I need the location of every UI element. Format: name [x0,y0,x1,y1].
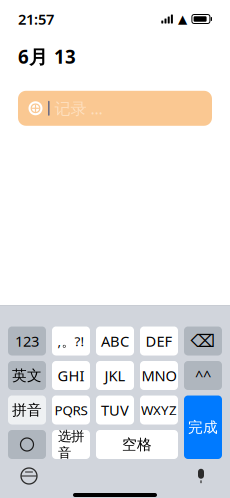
staticText: 空格 [122,435,152,453]
staticText: MNO [141,366,176,385]
button[interactable]: ^^ [184,361,222,390]
staticText: 21:57 [18,9,54,29]
staticText: GHI [57,366,84,385]
button[interactable]: 完成 [184,395,222,459]
staticText: 拼音 [12,401,42,419]
button[interactable]: 123 [8,326,46,355]
staticText: 6月 [18,44,48,69]
staticText: ⌫ [190,331,215,351]
button[interactable]: ABC [96,326,134,355]
staticText: 英文 [12,366,42,384]
staticText: 选拼音 [58,428,84,461]
button[interactable]: Dictation [188,463,214,489]
button[interactable]: DEF [140,326,178,355]
button[interactable]: PQRS [52,395,90,424]
button[interactable]: 拼音 [8,395,46,424]
staticText: DEF [145,331,172,351]
button[interactable]: 英文 [8,361,46,390]
staticText: TUV [101,400,129,420]
staticText: ,。?! [57,332,84,350]
button[interactable]: ,。?! [52,326,90,355]
staticText: 13 [54,44,76,69]
button[interactable]: 选拼音 [52,430,90,459]
staticText: 123 [15,331,39,351]
button[interactable]: MNO [140,361,178,390]
button[interactable]: Switch keyboard [16,463,42,489]
button[interactable]: 空格 [96,430,178,459]
staticText: WXYZ [141,401,177,419]
staticText: 记录 ... [55,98,103,119]
button[interactable]: 记录 ... [18,91,212,126]
staticText: JKL [104,366,125,385]
button[interactable]: WXYZ [140,395,178,424]
button[interactable]: TUV [96,395,134,424]
staticText: 完成 [188,418,218,436]
staticText: ABC [101,331,129,351]
button[interactable]: GHI [52,361,90,390]
staticText: ▲ [178,12,187,26]
button[interactable]: Emoji [8,430,46,459]
staticText: PQRS [54,401,87,419]
staticText: ^^ [195,366,211,385]
button[interactable]: JKL [96,361,134,390]
button[interactable]: Delete [184,326,222,355]
